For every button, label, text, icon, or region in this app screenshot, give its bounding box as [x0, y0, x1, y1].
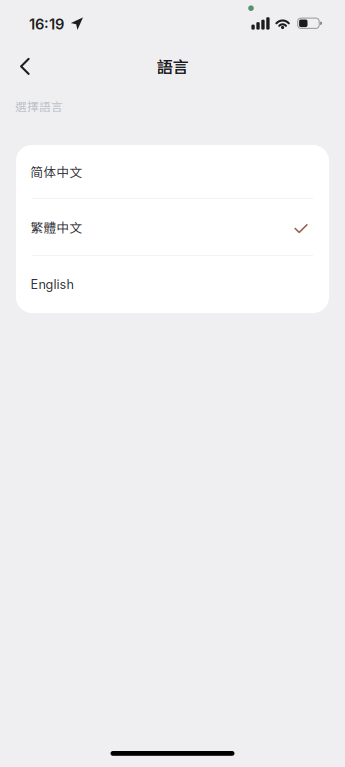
staticText: 選擇語言 — [15, 97, 63, 114]
staticText: 語言 — [156, 54, 188, 78]
staticText: English — [31, 277, 74, 292]
staticText: 16:19 — [29, 15, 64, 33]
staticText: 繁體中文 — [31, 218, 83, 236]
staticText: 简体中文 — [31, 162, 83, 181]
button[interactable]: English — [16, 256, 329, 313]
button[interactable]: Back — [7, 46, 43, 86]
button[interactable]: 繁體中文 — [16, 199, 329, 255]
button[interactable]: 简体中文 — [16, 145, 329, 198]
